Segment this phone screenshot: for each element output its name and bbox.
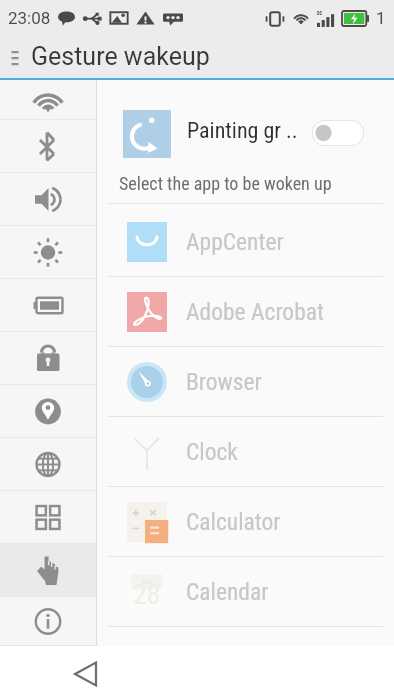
button[interactable]: Gestures bbox=[0, 544, 96, 597]
button[interactable]: Open navigation menu bbox=[0, 36, 31, 78]
button[interactable]: Language bbox=[0, 438, 96, 491]
button[interactable]: Volume bbox=[0, 173, 96, 226]
staticText: Tue bbox=[141, 577, 153, 586]
button[interactable]: Wi-Fi bbox=[0, 80, 96, 120]
button[interactable]: Location bbox=[0, 385, 96, 438]
button[interactable]: Adobe Acrobat bbox=[97, 277, 394, 347]
button[interactable]: Painting gr .. bbox=[97, 80, 394, 166]
staticText: AppCenter bbox=[186, 228, 284, 256]
button[interactable]: Back bbox=[61, 649, 111, 699]
button[interactable]: AppCenter bbox=[97, 207, 394, 277]
button[interactable]: Clock bbox=[97, 417, 394, 487]
button[interactable]: Browser bbox=[97, 347, 394, 417]
button[interactable] bbox=[312, 120, 364, 146]
button[interactable]: Security bbox=[0, 332, 96, 385]
staticText: Painting gr .. bbox=[187, 118, 298, 144]
staticText: Calculator bbox=[186, 508, 281, 536]
staticText: Browser bbox=[186, 368, 262, 396]
button[interactable]: Tue bbox=[97, 557, 394, 627]
staticText: 28 bbox=[133, 578, 161, 611]
staticText: 23:08 bbox=[8, 8, 51, 28]
button[interactable]: Brightness bbox=[0, 226, 96, 279]
button[interactable]: Calculator bbox=[97, 487, 394, 557]
staticText: Select the app to be woken up bbox=[119, 173, 332, 194]
button[interactable]: Bluetooth bbox=[0, 120, 96, 173]
staticText: Adobe Acrobat bbox=[186, 298, 324, 326]
staticText: Calendar bbox=[186, 578, 269, 606]
staticText: Gesture wakeup bbox=[31, 42, 210, 71]
button[interactable]: About bbox=[0, 597, 96, 646]
staticText: 1 bbox=[376, 8, 386, 28]
button[interactable]: Battery bbox=[0, 279, 96, 332]
button[interactable]: Apps bbox=[0, 491, 96, 544]
staticText: Clock bbox=[186, 438, 238, 466]
